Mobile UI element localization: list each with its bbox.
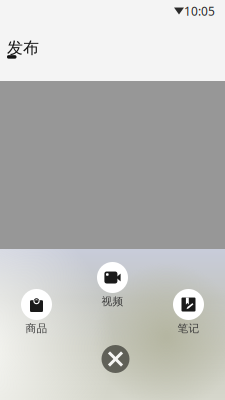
- button[interactable]: Close: [101, 345, 129, 373]
- staticText: 笔记: [177, 322, 199, 335]
- button[interactable]: 商品: [21, 289, 52, 335]
- staticText: 视频: [101, 295, 123, 308]
- button[interactable]: 视频: [97, 262, 128, 308]
- staticText: 10:05: [184, 3, 215, 19]
- staticText: 商品: [25, 322, 47, 335]
- staticText: 发布: [7, 38, 39, 58]
- button[interactable]: 笔记: [173, 289, 204, 335]
